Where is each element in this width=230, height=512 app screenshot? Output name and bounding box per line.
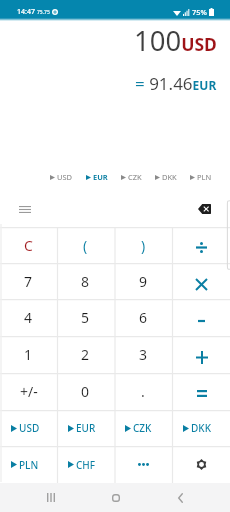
button[interactable]: Menu [19, 203, 31, 215]
staticText: DKK [162, 172, 177, 182]
button[interactable]: Settings [172, 446, 230, 483]
staticText: 75% [192, 7, 207, 17]
button[interactable]: 5 [57, 299, 114, 336]
button[interactable]: Recents [38, 483, 64, 512]
button[interactable]: 6 [114, 299, 172, 336]
button[interactable]: Divide [172, 227, 230, 263]
staticText: 75.75 [37, 9, 50, 16]
button[interactable]: ( [57, 227, 114, 263]
button[interactable]: USD [50, 172, 73, 182]
button[interactable]: 8 [57, 263, 114, 299]
staticText: C [24, 236, 33, 255]
button[interactable]: C [0, 227, 57, 263]
button[interactable]: Back [167, 483, 193, 512]
button[interactable]: EUR [86, 172, 108, 182]
staticText: USD [19, 421, 40, 435]
button[interactable]: ) [114, 227, 172, 263]
staticText: +/- [20, 382, 38, 401]
staticText: 9 [139, 272, 148, 291]
button[interactable] [114, 446, 172, 483]
button[interactable]: DKK [172, 410, 230, 446]
other: Add [195, 351, 208, 364]
staticText: ( [83, 236, 88, 255]
staticText: 4 [24, 308, 33, 327]
other: Equals [196, 388, 207, 399]
button[interactable]: Subtract [172, 299, 230, 336]
staticText: CHF [76, 458, 96, 472]
staticText: DKK [191, 421, 211, 435]
button[interactable]: DKK [155, 172, 177, 182]
staticText: CZK [133, 421, 152, 435]
staticText: = 91.46EUR [135, 72, 217, 95]
staticText: 0 [81, 382, 90, 401]
button[interactable]: 7 [0, 263, 57, 299]
staticText: 5 [81, 308, 90, 327]
other: Divide [196, 242, 207, 253]
staticText: EUR [76, 421, 96, 435]
button[interactable]: CZK [114, 410, 172, 446]
other: Settings [172, 446, 230, 483]
button[interactable]: Backspace [197, 203, 211, 215]
button[interactable]: 3 [114, 336, 172, 373]
button[interactable]: 0 [57, 373, 114, 410]
staticText: 3 [139, 345, 148, 364]
staticText: . [141, 382, 145, 401]
button[interactable]: Add [172, 336, 230, 373]
staticText: ) [141, 236, 146, 255]
button[interactable]: 1 [0, 336, 57, 373]
button[interactable]: CHF [57, 446, 114, 483]
button[interactable]: +/- [0, 373, 57, 410]
button[interactable]: Multiply [172, 263, 230, 299]
staticText: PLN [197, 172, 212, 182]
staticText: USD [57, 172, 73, 182]
staticText: 6 [139, 308, 148, 327]
staticText: CZK [128, 172, 142, 182]
staticText: 14:47 [17, 7, 35, 17]
button[interactable]: CZK [121, 172, 142, 182]
button[interactable]: PLN [0, 446, 57, 483]
other: Multiply [196, 279, 207, 290]
staticText: EUR [93, 172, 108, 182]
button[interactable]: . [114, 373, 172, 410]
staticText: PLN [19, 458, 39, 472]
staticText: 8 [81, 272, 90, 291]
other: Subtract [196, 315, 207, 326]
button[interactable]: Home [103, 483, 129, 512]
button[interactable]: Equals [172, 373, 230, 410]
button[interactable]: 4 [0, 299, 57, 336]
button[interactable]: EUR [57, 410, 114, 446]
button[interactable]: 2 [57, 336, 114, 373]
staticText: 2 [81, 345, 90, 364]
staticText: 100USD [134, 22, 217, 59]
staticText: 1 [24, 345, 33, 364]
staticText: 7 [24, 272, 33, 291]
button[interactable]: 9 [114, 263, 172, 299]
button[interactable]: PLN [190, 172, 212, 182]
button[interactable]: USD [0, 410, 57, 446]
